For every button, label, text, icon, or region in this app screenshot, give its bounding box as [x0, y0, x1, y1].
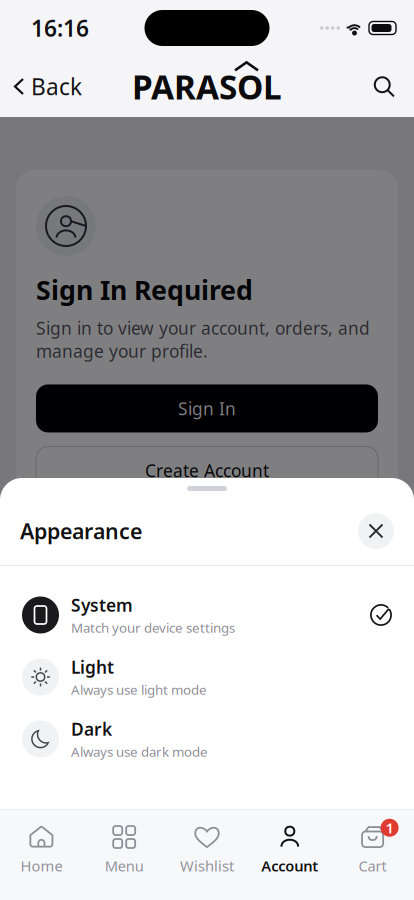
staticText: Account [261, 856, 318, 875]
staticText: Menu [105, 856, 144, 875]
staticText: Wishlist [180, 856, 234, 875]
staticText: Back [31, 71, 82, 101]
button[interactable]: Back [0, 59, 82, 113]
staticText: PARASOL [132, 64, 282, 109]
staticText: 1 [386, 818, 394, 837]
button[interactable]: Close [358, 513, 394, 549]
staticText: Cart [359, 856, 387, 875]
staticText: Sign in to view your account, orders, an… [36, 316, 370, 362]
staticText: Home [20, 856, 62, 875]
button[interactable]: Home [0, 810, 83, 900]
button[interactable]: Search [373, 63, 414, 109]
button[interactable]: Account [248, 810, 331, 900]
button[interactable]: System [0, 584, 414, 646]
button[interactable]: Dark [0, 708, 414, 770]
button[interactable]: Wishlist [166, 810, 248, 900]
staticText: Cart [359, 856, 387, 875]
button[interactable]: Create Account [36, 446, 378, 494]
staticText: 1 [386, 818, 394, 837]
button[interactable]: Menu [83, 810, 166, 900]
button[interactable]: 1 [331, 810, 414, 900]
button[interactable]: Wishlist [166, 810, 248, 900]
button[interactable]: 1 [331, 810, 414, 900]
button[interactable]: Account [248, 810, 331, 900]
button[interactable]: Menu [83, 810, 166, 900]
staticText: Wishlist [180, 856, 234, 875]
staticText: Always use dark mode [71, 743, 208, 760]
staticText: Dark [71, 718, 112, 741]
staticText: 16:16 [31, 13, 89, 43]
button[interactable]: Light [0, 646, 414, 708]
staticText: Home [20, 856, 62, 875]
staticText: Sign In Required [36, 272, 253, 307]
staticText: Account [261, 856, 318, 875]
staticText: Sign In [178, 397, 236, 420]
staticText: Always use light mode [71, 681, 207, 698]
staticText: Appearance [20, 517, 142, 545]
staticText: System [71, 594, 133, 617]
staticText: Light [71, 656, 114, 679]
staticText: Create Account [145, 459, 269, 482]
button[interactable]: Home [0, 810, 83, 900]
staticText: Menu [105, 856, 144, 875]
staticText: Match your device settings [71, 619, 235, 636]
button[interactable]: Sign In [36, 384, 378, 432]
